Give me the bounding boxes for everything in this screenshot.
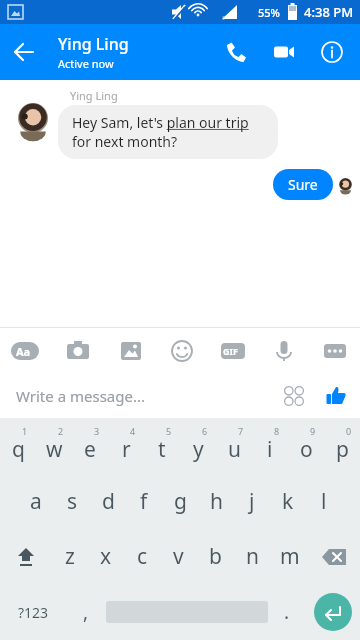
button[interactable]: v (160, 529, 197, 584)
button[interactable]: Space (106, 596, 268, 628)
staticText: q (12, 435, 25, 464)
button[interactable]: x (88, 529, 124, 584)
button[interactable]: Ying Ling (58, 33, 129, 71)
button[interactable]: j (234, 474, 270, 529)
button[interactable]: ?123 (0, 584, 66, 640)
staticText: v (173, 542, 184, 571)
button[interactable]: Back (0, 28, 48, 76)
button[interactable]: 6 (180, 418, 216, 474)
staticText: e (84, 435, 96, 464)
button[interactable]: Hey Sam, let's plan our trip for next mo… (58, 105, 278, 159)
staticText: , (83, 599, 89, 625)
staticText: 55% (258, 5, 280, 20)
button[interactable]: Enter (306, 584, 360, 640)
staticText: k (282, 487, 294, 516)
staticText: Write a message... (16, 386, 145, 406)
button[interactable]: Sure (273, 169, 333, 200)
staticText: 7 (238, 425, 244, 437)
staticText: l (321, 487, 327, 516)
staticText: p (336, 435, 349, 464)
staticText: c (137, 542, 148, 571)
button[interactable]: k (270, 474, 306, 529)
button[interactable]: Photos (104, 328, 156, 374)
button[interactable]: g (162, 474, 198, 529)
button[interactable]: 9 (288, 418, 324, 474)
staticText: Active now (58, 56, 114, 71)
button[interactable]: 1 (0, 418, 36, 474)
staticText: 4:38 PM (304, 3, 354, 21)
button[interactable]: 8 (252, 418, 288, 474)
button[interactable]: s (54, 474, 90, 529)
button[interactable]: Video call (260, 28, 308, 76)
staticText: . (284, 599, 290, 625)
staticText: u (228, 435, 241, 464)
staticText: 2 (58, 425, 64, 437)
staticText: a (30, 487, 42, 516)
button[interactable]: Camera (52, 328, 104, 374)
button[interactable]: d (90, 474, 126, 529)
staticText: x (100, 542, 112, 571)
button[interactable]: Comma (66, 584, 106, 640)
button[interactable]: Voice (258, 328, 309, 374)
button[interactable]: Send a like (318, 378, 354, 414)
button[interactable]: 5 (144, 418, 180, 474)
staticText: r (122, 435, 131, 464)
staticText: Ying Ling (58, 33, 129, 55)
staticText: j (249, 487, 255, 516)
button[interactable]: Conversation information (308, 28, 356, 76)
staticText: h (210, 487, 223, 516)
button[interactable]: Emoji (278, 380, 310, 412)
staticText: 0 (346, 425, 352, 437)
button[interactable]: More (309, 328, 360, 374)
staticText: 3 (94, 425, 100, 437)
staticText: z (65, 542, 75, 571)
staticText: ?123 (18, 603, 49, 622)
button[interactable]: 4 (108, 418, 144, 474)
button[interactable]: Shift (0, 529, 52, 584)
button[interactable]: z (52, 529, 88, 584)
button[interactable]: f (126, 474, 162, 529)
staticText: t (158, 435, 166, 464)
button[interactable]: 2 (36, 418, 72, 474)
button[interactable]: Backspace (308, 529, 360, 584)
button[interactable]: Call (212, 28, 260, 76)
staticText: Sure (288, 175, 318, 194)
button[interactable]: a (18, 474, 54, 529)
button[interactable]: 7 (216, 418, 252, 474)
staticText: g (174, 487, 187, 516)
button[interactable]: 0 (324, 418, 360, 474)
staticText: d (102, 487, 115, 516)
button[interactable]: Stickers (156, 328, 207, 374)
staticText: i (267, 435, 273, 464)
button[interactable]: l (306, 474, 342, 529)
staticText: 6 (202, 425, 208, 437)
button[interactable]: b (197, 529, 234, 584)
staticText: s (67, 487, 78, 516)
button[interactable]: h (198, 474, 234, 529)
button[interactable]: n (234, 529, 271, 584)
staticText: m (280, 542, 300, 571)
button[interactable]: Period (268, 584, 306, 640)
staticText: w (46, 435, 63, 464)
staticText: 1 (22, 425, 28, 437)
staticText: n (246, 542, 259, 571)
button[interactable]: m (271, 529, 308, 584)
staticText: o (300, 435, 313, 464)
button[interactable]: c (124, 529, 160, 584)
staticText: 4 (130, 425, 136, 437)
button[interactable]: Text (0, 328, 52, 374)
staticText: Hey Sam, let's plan our trip for next mo… (72, 113, 264, 151)
staticText: f (140, 487, 148, 516)
staticText: Aa (16, 344, 31, 359)
staticText: 8 (274, 425, 280, 437)
staticText: y (193, 435, 204, 464)
button[interactable]: GIF (207, 328, 258, 374)
staticText: 9 (310, 425, 316, 437)
staticText: Ying Ling (70, 88, 118, 103)
staticText: GIF (223, 345, 238, 357)
button[interactable]: Write a message... (6, 374, 276, 418)
staticText: b (209, 542, 222, 571)
button[interactable]: 3 (72, 418, 108, 474)
staticText: 5 (166, 425, 172, 437)
